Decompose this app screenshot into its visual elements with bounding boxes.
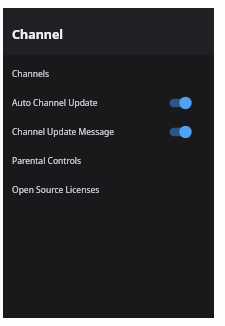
staticText: Channel Update Message — [12, 126, 168, 138]
button[interactable]: Channel Update Message — [3, 117, 214, 146]
button[interactable]: Auto Channel Update toggle — [168, 95, 194, 111]
staticText: Open Source Licenses — [12, 184, 194, 196]
staticText: Auto Channel Update — [12, 97, 168, 109]
staticText: Parental Controls — [12, 155, 194, 167]
button[interactable]: Parental Controls — [3, 146, 214, 175]
staticText: Channels — [12, 68, 194, 80]
button[interactable]: Channels — [3, 59, 214, 88]
staticText: Channel — [12, 26, 64, 43]
button[interactable]: Channel Update Message toggle — [168, 124, 194, 140]
button[interactable]: Open Source Licenses — [3, 175, 214, 204]
button[interactable]: Auto Channel Update — [3, 88, 214, 117]
